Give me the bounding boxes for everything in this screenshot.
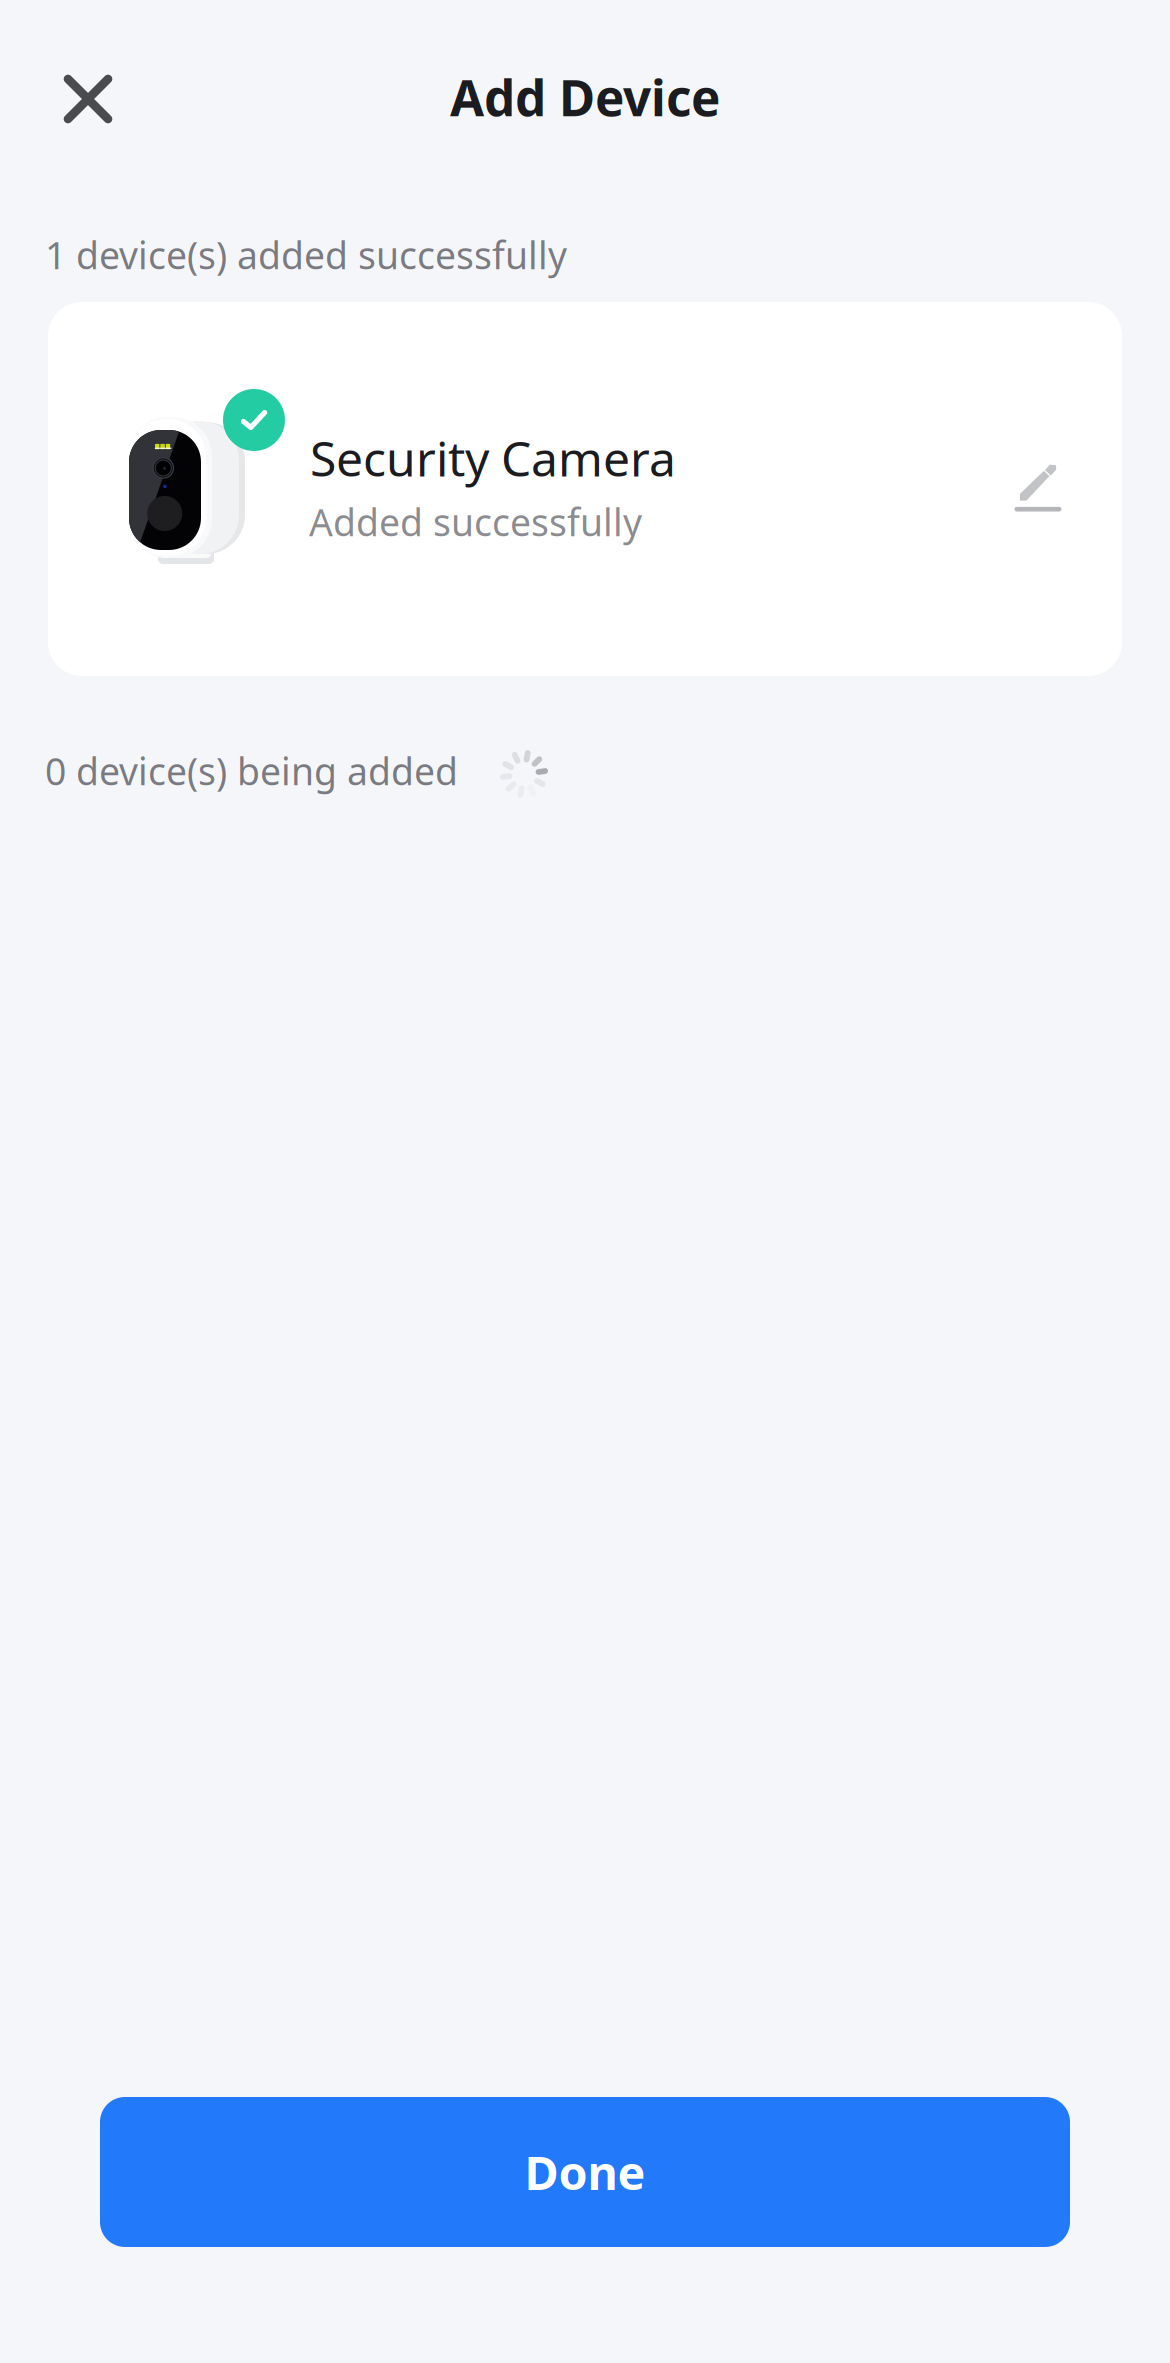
staticText: Security Camera — [310, 426, 676, 490]
staticText: 1 device(s) added successfully — [45, 230, 567, 280]
staticText: Done — [524, 2141, 645, 2203]
staticText: Added successfully — [309, 497, 642, 547]
staticText: Add Device — [450, 64, 720, 130]
button[interactable]: Done — [100, 2097, 1070, 2247]
button[interactable]: Rename device — [994, 441, 1082, 529]
button[interactable]: Close — [42, 53, 134, 145]
staticText: 0 device(s) being added — [45, 746, 458, 796]
